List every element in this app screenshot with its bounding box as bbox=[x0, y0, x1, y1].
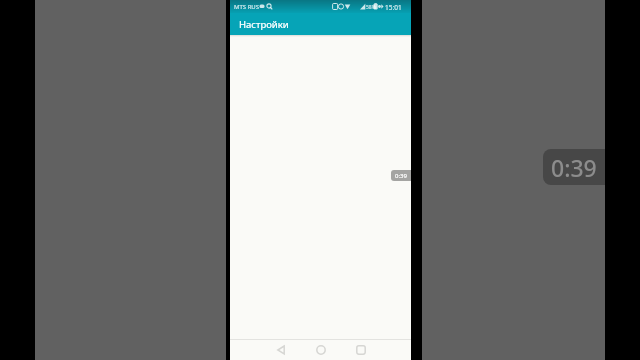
button[interactable] bbox=[341, 340, 381, 360]
staticText: 58% bbox=[366, 4, 376, 11]
staticText: 0:39 bbox=[551, 152, 597, 183]
staticText: MTS RUS bbox=[234, 3, 260, 11]
staticText: 0:39 bbox=[395, 172, 407, 180]
button[interactable] bbox=[261, 340, 301, 360]
staticText: Настройки bbox=[239, 18, 289, 31]
staticText: 15:01 bbox=[385, 3, 402, 12]
button[interactable] bbox=[301, 340, 341, 360]
button[interactable]: Настройки bbox=[230, 13, 411, 35]
